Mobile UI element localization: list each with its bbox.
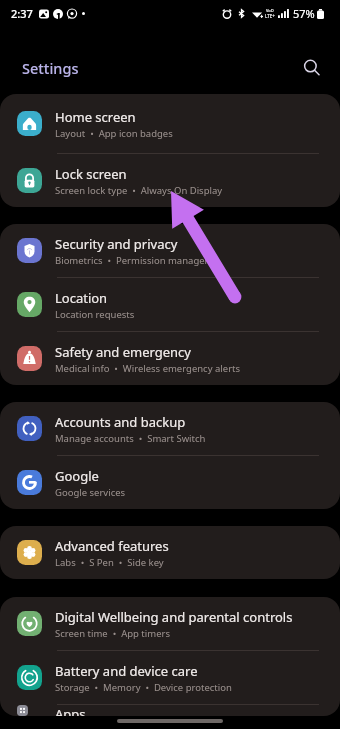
staticText: Security and privacy xyxy=(55,235,178,253)
staticText: Battery and device care xyxy=(55,662,198,680)
staticText: Medical info • Wireless emergency alerts xyxy=(55,362,241,375)
staticText: Home screen xyxy=(55,108,136,126)
button[interactable]: Google xyxy=(0,456,340,509)
staticText: Layout • App icon badges xyxy=(55,127,173,140)
staticText: Location xyxy=(55,289,108,307)
button[interactable]: Battery and device care xyxy=(0,651,340,704)
button[interactable]: Location xyxy=(0,278,340,331)
staticText: Settings xyxy=(22,58,79,78)
button[interactable]: Search xyxy=(300,56,324,80)
staticText: Lock screen xyxy=(55,165,127,183)
staticText: Storage • Memory • Device protection xyxy=(55,681,232,694)
staticText: 57% xyxy=(293,6,315,21)
button[interactable]: Accounts and backup xyxy=(0,402,340,455)
staticText: 2:37 xyxy=(11,6,33,21)
staticText: Safety and emergency xyxy=(55,343,191,361)
button[interactable]: Advanced features xyxy=(0,526,340,579)
button[interactable]: Apps xyxy=(0,705,340,716)
staticText: Google services xyxy=(55,486,126,499)
staticText: Location requests xyxy=(55,308,135,321)
staticText: Digital Wellbeing and parental controls xyxy=(55,608,293,626)
staticText: VoD xyxy=(266,8,274,13)
staticText: Accounts and backup xyxy=(55,413,186,431)
button[interactable]: Digital Wellbeing and parental controls xyxy=(0,597,340,650)
staticText: Manage accounts • Smart Switch xyxy=(55,432,206,445)
staticText: Google xyxy=(55,467,99,485)
staticText: Advanced features xyxy=(55,537,169,555)
staticText: Screen lock type • Always On Display xyxy=(55,184,223,197)
staticText: Labs • S Pen • Side key xyxy=(55,556,164,569)
staticText: Apps xyxy=(55,705,86,716)
staticText: LTE+ xyxy=(265,13,275,19)
button[interactable]: Home screen xyxy=(0,94,340,153)
button[interactable]: Lock screen xyxy=(0,154,340,207)
staticText: Biometrics • Permission manager xyxy=(55,254,209,267)
staticText: Screen time • App timers xyxy=(55,627,170,640)
button[interactable]: Safety and emergency xyxy=(0,332,340,385)
button[interactable]: Security and privacy xyxy=(0,224,340,277)
